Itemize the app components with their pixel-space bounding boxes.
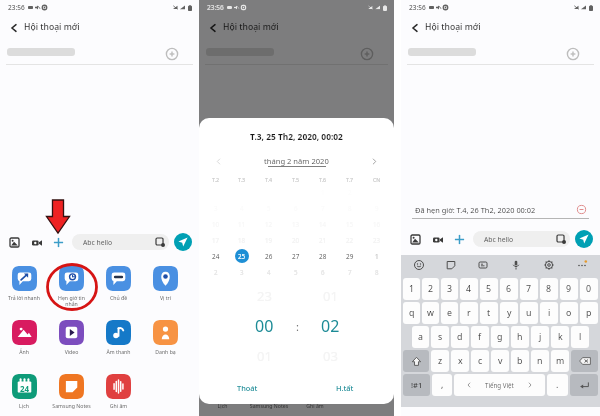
button[interactable]: Camera <box>29 235 44 250</box>
button[interactable]: Back <box>205 20 220 35</box>
button[interactable]: Samsung Notes <box>246 371 292 409</box>
button[interactable]: More <box>565 255 598 274</box>
button[interactable]: Vị trí <box>142 263 189 301</box>
button[interactable]: Ghi âm <box>95 371 142 409</box>
button[interactable]: 24 <box>199 371 246 409</box>
button[interactable]: Send <box>174 233 192 251</box>
button[interactable]: Abc hello <box>72 234 169 250</box>
button[interactable]: 5 <box>480 278 498 300</box>
button[interactable]: Add recipient <box>164 46 180 62</box>
button[interactable]: 4 <box>460 278 478 300</box>
staticText: !#1 <box>411 380 423 390</box>
button[interactable]: n <box>531 350 549 372</box>
button[interactable]: z <box>431 350 449 372</box>
button[interactable]: enter <box>570 374 598 396</box>
button[interactable]: g <box>491 326 509 348</box>
button[interactable]: Remove schedule <box>577 205 586 214</box>
button[interactable]: c <box>471 350 489 372</box>
button[interactable]: Danh bạ <box>142 317 189 355</box>
button[interactable]: 0 <box>580 278 598 300</box>
button[interactable]: v <box>491 350 509 372</box>
button[interactable]: Camera <box>430 232 445 247</box>
button[interactable]: Gallery <box>408 232 423 247</box>
button[interactable]: 2 <box>422 278 439 300</box>
button[interactable]: Add attachment <box>452 232 467 247</box>
button[interactable]: k <box>551 326 569 348</box>
button[interactable]: Trả lời nhanh <box>0 263 48 301</box>
button[interactable]: Settings <box>532 255 565 274</box>
button[interactable]: Âm thanh <box>292 317 338 355</box>
button[interactable]: Hẹn giờ tin nhắn <box>48 263 95 307</box>
button[interactable]: Back <box>407 20 422 35</box>
button[interactable]: Previous month <box>213 156 224 167</box>
button[interactable]: e <box>441 302 458 324</box>
button[interactable]: Add recipient <box>565 46 581 62</box>
button[interactable]: d <box>451 326 469 348</box>
button[interactable]: 25 <box>235 249 249 263</box>
button[interactable]: s <box>431 326 449 348</box>
button[interactable]: , <box>432 374 452 396</box>
button[interactable]: Video <box>48 317 95 355</box>
button[interactable]: Ảnh <box>0 317 48 355</box>
button[interactable]: w <box>422 302 439 324</box>
button[interactable]: del <box>571 350 598 372</box>
button[interactable]: Âm thanh <box>95 317 142 355</box>
button[interactable]: Next month <box>369 156 380 167</box>
button[interactable]: Emoji <box>403 255 435 274</box>
button[interactable]: b <box>511 350 529 372</box>
button[interactable]: Abc hello <box>473 231 570 247</box>
button[interactable]: j <box>531 326 549 348</box>
button[interactable]: Back <box>6 20 21 35</box>
button[interactable]: . <box>547 374 568 396</box>
button[interactable]: 7 <box>520 278 538 300</box>
button[interactable]: y <box>500 302 518 324</box>
button[interactable]: 1 <box>403 278 420 300</box>
button[interactable]: 3 <box>441 278 458 300</box>
button[interactable]: Thoát <box>199 378 296 398</box>
button[interactable]: Sticker <box>435 255 467 274</box>
button[interactable]: Danh bạ <box>338 317 384 355</box>
button[interactable]: p <box>580 302 598 324</box>
button[interactable]: u <box>520 302 538 324</box>
button[interactable]: !#1 <box>403 374 430 396</box>
button[interactable]: i <box>540 302 558 324</box>
button[interactable]: o <box>560 302 578 324</box>
button[interactable]: q <box>403 302 420 324</box>
button[interactable]: Ghi âm <box>292 371 338 409</box>
button[interactable]: Tiếng Việt <box>454 374 545 396</box>
button[interactable]: h <box>511 326 529 348</box>
button[interactable]: Add attachment <box>51 235 66 250</box>
button[interactable]: l <box>571 326 589 348</box>
button[interactable]: Voice input <box>499 255 532 274</box>
button[interactable]: Video <box>246 317 292 355</box>
button[interactable]: t <box>480 302 498 324</box>
button[interactable]: 24 <box>0 371 48 409</box>
button[interactable]: 8 <box>540 278 558 300</box>
button[interactable]: f <box>471 326 489 348</box>
button[interactable]: Add recipient <box>359 46 375 62</box>
button[interactable]: Samsung Notes <box>48 371 95 409</box>
button[interactable]: Gallery <box>7 235 22 250</box>
button[interactable]: shift <box>403 350 429 372</box>
button[interactable]: r <box>460 302 478 324</box>
button[interactable]: Text mode <box>467 255 499 274</box>
button[interactable]: x <box>451 350 469 372</box>
button[interactable]: a <box>412 326 429 348</box>
button[interactable]: m <box>551 350 569 372</box>
button[interactable]: Send <box>575 230 593 248</box>
button[interactable]: 6 <box>500 278 518 300</box>
button[interactable]: Chủ đề <box>95 263 142 301</box>
button[interactable]: H.tất <box>296 378 394 398</box>
button[interactable]: Camera <box>228 235 243 250</box>
button[interactable]: 9 <box>560 278 578 300</box>
